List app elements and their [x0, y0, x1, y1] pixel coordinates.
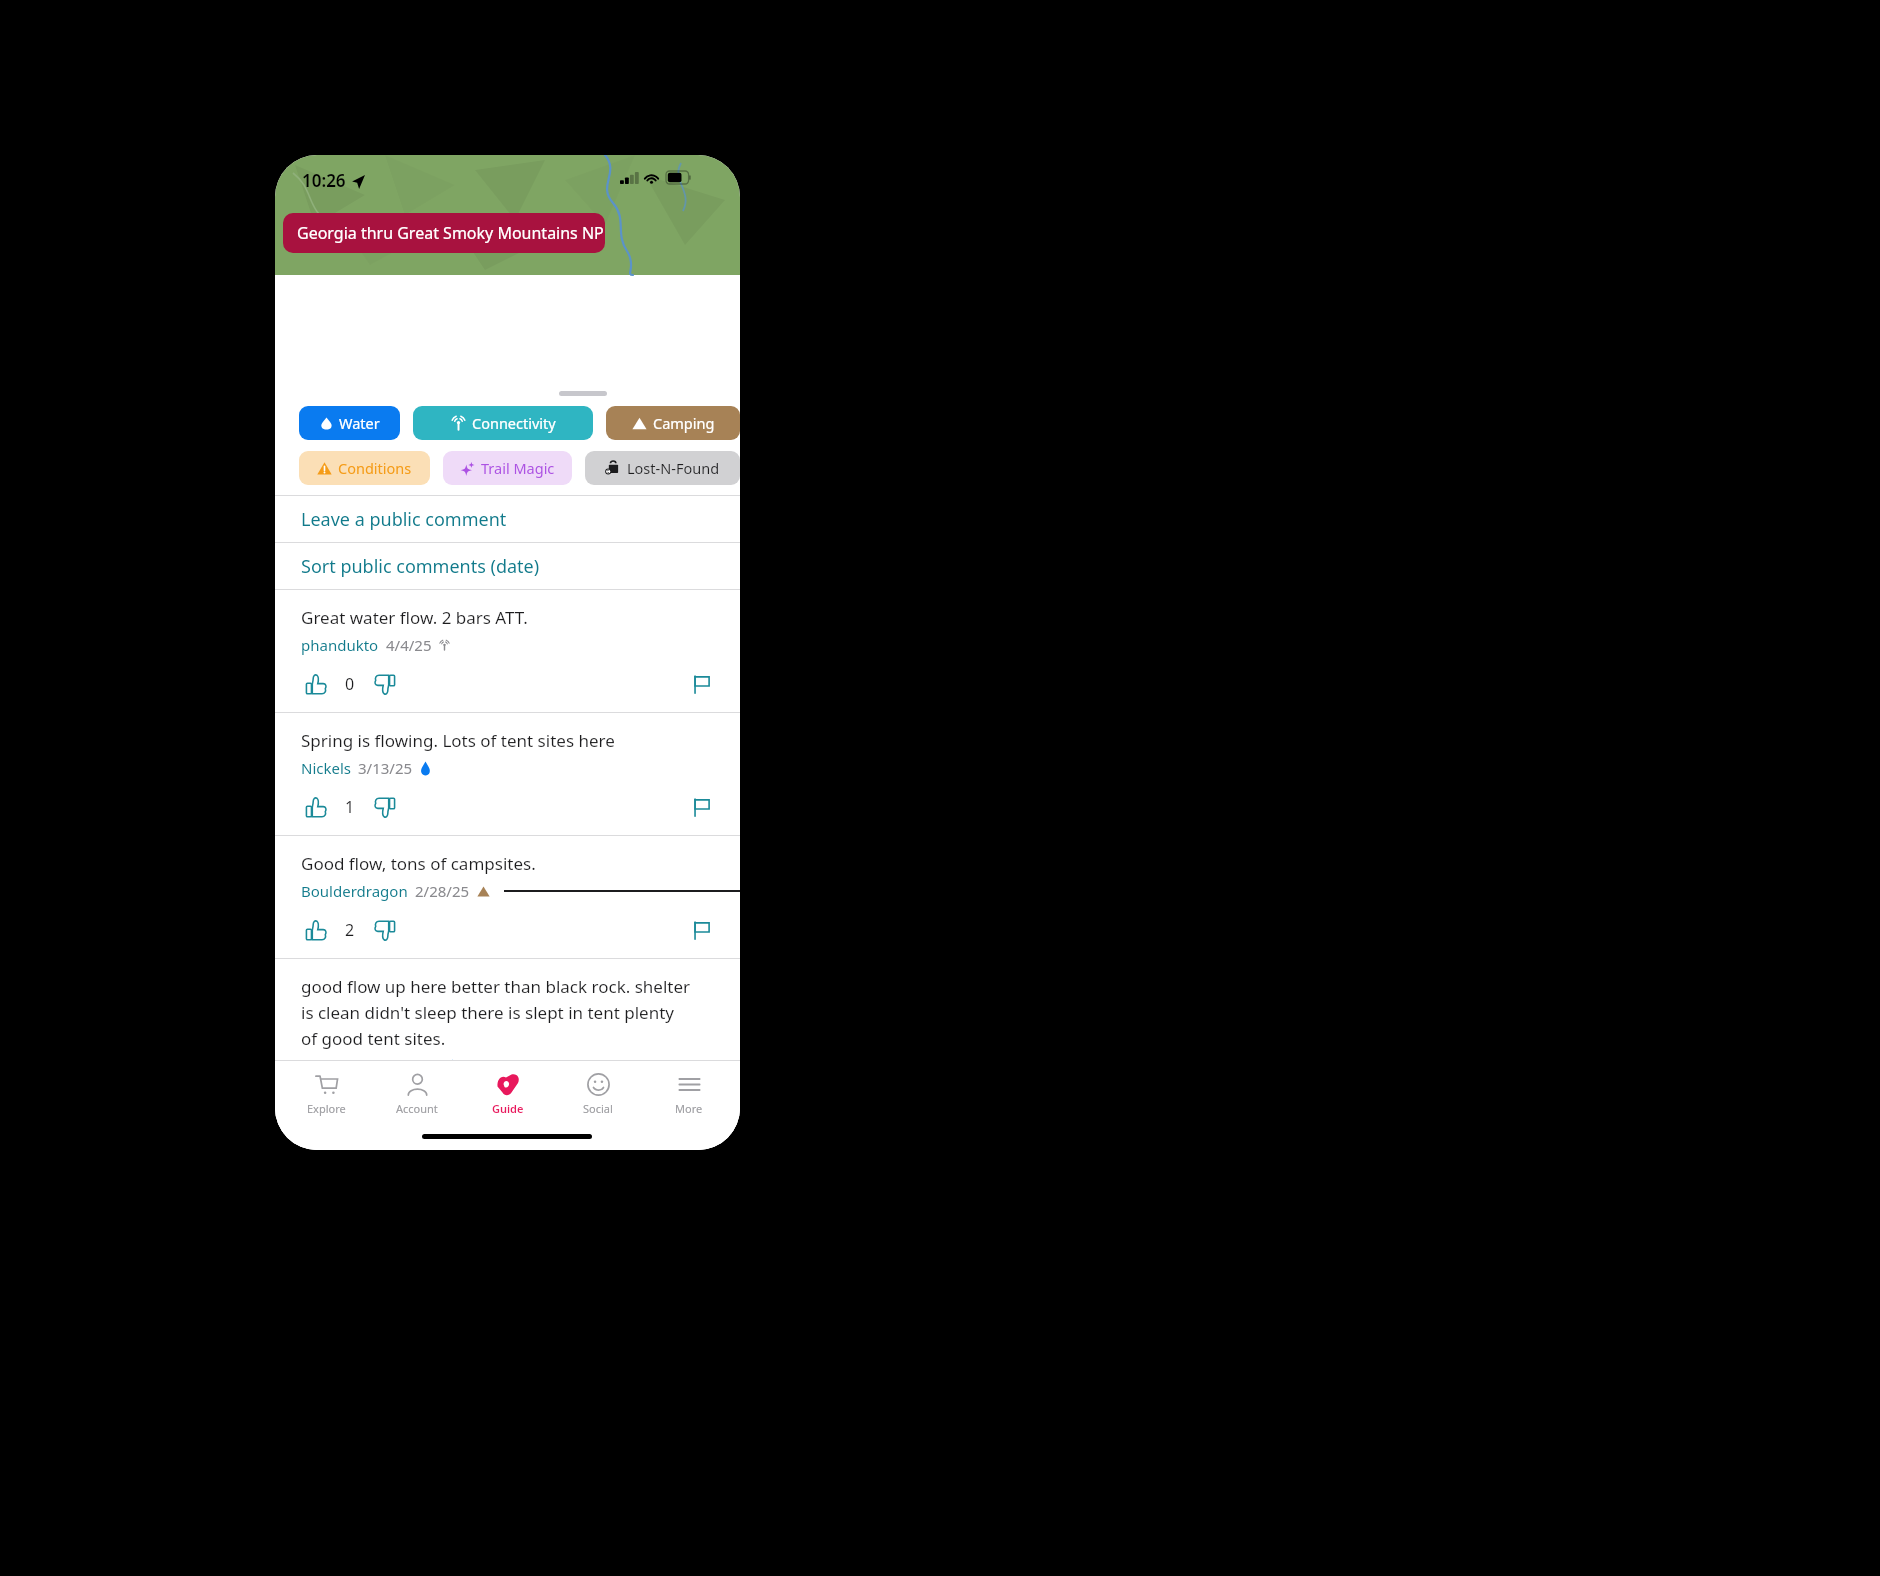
button[interactable]: Report [686, 792, 716, 822]
button[interactable]: Downvote [369, 792, 399, 822]
button[interactable]: More [649, 1071, 729, 1116]
button[interactable]: Stream at the shelter flowing well. Easy… [275, 1134, 740, 1150]
button[interactable]: Good flow, tons of campsites. [275, 836, 740, 958]
staticText: Daniel levy [301, 1056, 378, 1076]
staticText: 1 [345, 796, 355, 818]
button[interactable]: Upvote [301, 669, 331, 699]
staticText: Connectivity [472, 413, 556, 433]
button[interactable]: Upvote [301, 1090, 331, 1120]
button[interactable]: Upvote [301, 792, 331, 822]
staticText: Sort public comments (date) [301, 554, 540, 579]
button[interactable]: Report [686, 1090, 716, 1120]
staticText: 0 [345, 673, 355, 695]
button[interactable]: Sort public comments (date) [275, 543, 740, 589]
staticText: Good flow, tons of campsites. [301, 852, 536, 875]
staticText: Boulderdragon [301, 881, 408, 901]
staticText: Stream at the shelter flowing well. Easy… [301, 1144, 637, 1150]
staticText: Conditions [338, 458, 412, 478]
button[interactable]: Upvote [301, 915, 331, 945]
button[interactable]: Leave a public comment [275, 496, 740, 542]
staticText: Guide [492, 1101, 524, 1116]
staticText: More [675, 1101, 703, 1116]
staticText: 3/13/25 [358, 758, 413, 778]
staticText: Camping [653, 413, 715, 433]
button[interactable]: Downvote [369, 1090, 399, 1120]
staticText: of good tent sites. [301, 1027, 446, 1050]
button[interactable]: Connectivity [413, 406, 593, 440]
staticText: 4/4/25 [386, 635, 432, 655]
button[interactable]: Water [299, 406, 400, 440]
staticText: Great water flow. 2 bars ATT. [301, 606, 528, 629]
staticText: Spring is flowing. Lots of tent sites he… [301, 729, 615, 752]
button[interactable]: Georgia thru Great Smoky Mountains NP [283, 213, 605, 253]
button[interactable]: Trail Magic [443, 451, 572, 485]
staticText: 10:26 [302, 169, 346, 192]
button[interactable]: Account [377, 1071, 457, 1116]
staticText: Nickels [301, 758, 351, 778]
button[interactable]: Downvote [369, 669, 399, 699]
button[interactable]: Lost-N-Found [585, 451, 740, 485]
button[interactable]: Explore [286, 1071, 366, 1116]
button[interactable]: good flow up here better than black rock… [275, 959, 740, 1133]
staticText: 2/28/25 [415, 881, 470, 901]
staticText: Lost-N-Found [627, 458, 720, 478]
staticText: Account [396, 1101, 438, 1116]
button[interactable]: Report [686, 915, 716, 945]
button[interactable]: Great water flow. 2 bars ATT. [275, 590, 740, 712]
staticText: 2 [345, 919, 355, 941]
button[interactable]: Guide [468, 1071, 548, 1116]
staticText: is clean didn't sleep there is slept in … [301, 1001, 674, 1024]
staticText: phandukto [301, 635, 379, 655]
staticText: Social [583, 1101, 613, 1116]
staticText: Trail Magic [481, 458, 555, 478]
staticText: Leave a public comment [301, 507, 507, 532]
button[interactable]: Downvote [369, 915, 399, 945]
staticText: good flow up here better than black rock… [301, 975, 691, 998]
button[interactable]: Social [558, 1071, 638, 1116]
button[interactable]: Spring is flowing. Lots of tent sites he… [275, 713, 740, 835]
staticText: Georgia thru Great Smoky Mountains NP [297, 222, 604, 244]
staticText: 2/21/25 [385, 1056, 440, 1076]
button[interactable]: Camping [606, 406, 740, 440]
staticText: Water [339, 413, 380, 433]
staticText: Explore [307, 1101, 346, 1116]
button[interactable]: Report [686, 669, 716, 699]
button[interactable]: Conditions [299, 451, 430, 485]
